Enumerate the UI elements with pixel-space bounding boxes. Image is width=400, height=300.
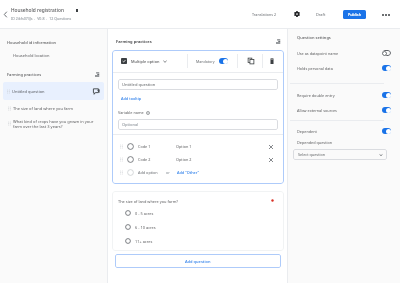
staticText: Option 1	[176, 144, 192, 149]
staticText: Code 2	[138, 157, 151, 162]
button[interactable]: Add tooltip	[121, 96, 142, 101]
staticText: Farming practices	[116, 39, 152, 44]
button[interactable]: Add question	[115, 254, 281, 268]
staticText: Code 1	[138, 144, 151, 149]
staticText: Household id information	[7, 40, 57, 45]
staticText: Mandatory	[196, 59, 215, 64]
button[interactable]: Use as datapoint name	[297, 50, 391, 56]
staticText: Multiple option	[131, 59, 160, 64]
button[interactable]: Untitled question	[118, 79, 278, 90]
button[interactable]: Draft	[316, 12, 326, 17]
staticText: 0 - 5 acres	[135, 211, 154, 216]
button[interactable]: Duplicate question	[245, 50, 256, 72]
staticText: Publish	[348, 12, 361, 17]
button[interactable]: Holds personal data	[297, 65, 391, 71]
button[interactable]: Untitled question	[3, 82, 104, 100]
staticText: Select question	[298, 152, 326, 157]
button[interactable]: Require double entry	[297, 92, 391, 98]
staticText: 11+ acres	[135, 239, 153, 244]
button[interactable]: Add option	[138, 170, 158, 175]
button[interactable]: The size of land where you farm	[8, 106, 101, 111]
button[interactable]: Reorder section	[93, 70, 101, 78]
staticText: What kind of crops have you grown in you…	[13, 119, 101, 129]
button[interactable]: Back	[1, 10, 10, 19]
staticText: The size of land where you farm?	[118, 199, 178, 204]
staticText: or	[166, 170, 170, 175]
staticText: Farming practices	[7, 72, 42, 77]
button[interactable]: The size of land where you farm?	[112, 191, 284, 251]
staticText: Require double entry	[297, 93, 335, 98]
button[interactable]: Translations 2	[252, 12, 277, 17]
button[interactable]: Delete question	[266, 50, 277, 72]
button[interactable]: Allow external sources	[297, 107, 391, 113]
button[interactable]: Reorder questions	[274, 37, 282, 45]
staticText: Holds personal data	[297, 66, 333, 71]
button[interactable]: Dependent	[297, 128, 391, 134]
button[interactable]: Edit name	[74, 8, 79, 13]
staticText: Depended question	[297, 140, 333, 145]
button[interactable]: More options	[380, 9, 391, 20]
button[interactable]: Select question	[293, 149, 387, 160]
staticText: Use as datapoint name	[297, 51, 339, 56]
staticText: Add question	[185, 259, 211, 264]
button[interactable]: Remove option	[267, 156, 274, 163]
staticText: Option 2	[176, 157, 192, 162]
staticText: Household registration	[11, 7, 64, 14]
staticText: Untitled question	[122, 82, 156, 88]
staticText: Question settings	[297, 35, 331, 40]
button[interactable]: Optional	[118, 119, 278, 130]
button[interactable]	[121, 58, 127, 64]
button[interactable]: Settings	[292, 9, 302, 19]
button[interactable]: Remove option	[267, 143, 274, 150]
staticText: Optional	[122, 122, 139, 127]
staticText: The size of land where you farm	[13, 106, 73, 111]
staticText: Untitled question	[12, 89, 45, 94]
staticText: Allow external sources	[297, 108, 337, 113]
staticText: Variable name	[118, 110, 144, 115]
staticText: 6 - 10 acres	[135, 225, 156, 230]
staticText: ID 2ikfs073Js . V0.8 . 12 Questions	[11, 16, 72, 21]
button[interactable]: What kind of crops have you grown in you…	[8, 119, 101, 129]
button[interactable]: Add "Other"	[177, 170, 200, 175]
button[interactable]: Household location	[13, 53, 50, 58]
button[interactable]: Publish	[343, 10, 366, 19]
staticText: Dependent	[297, 129, 317, 134]
button[interactable]	[219, 58, 228, 64]
